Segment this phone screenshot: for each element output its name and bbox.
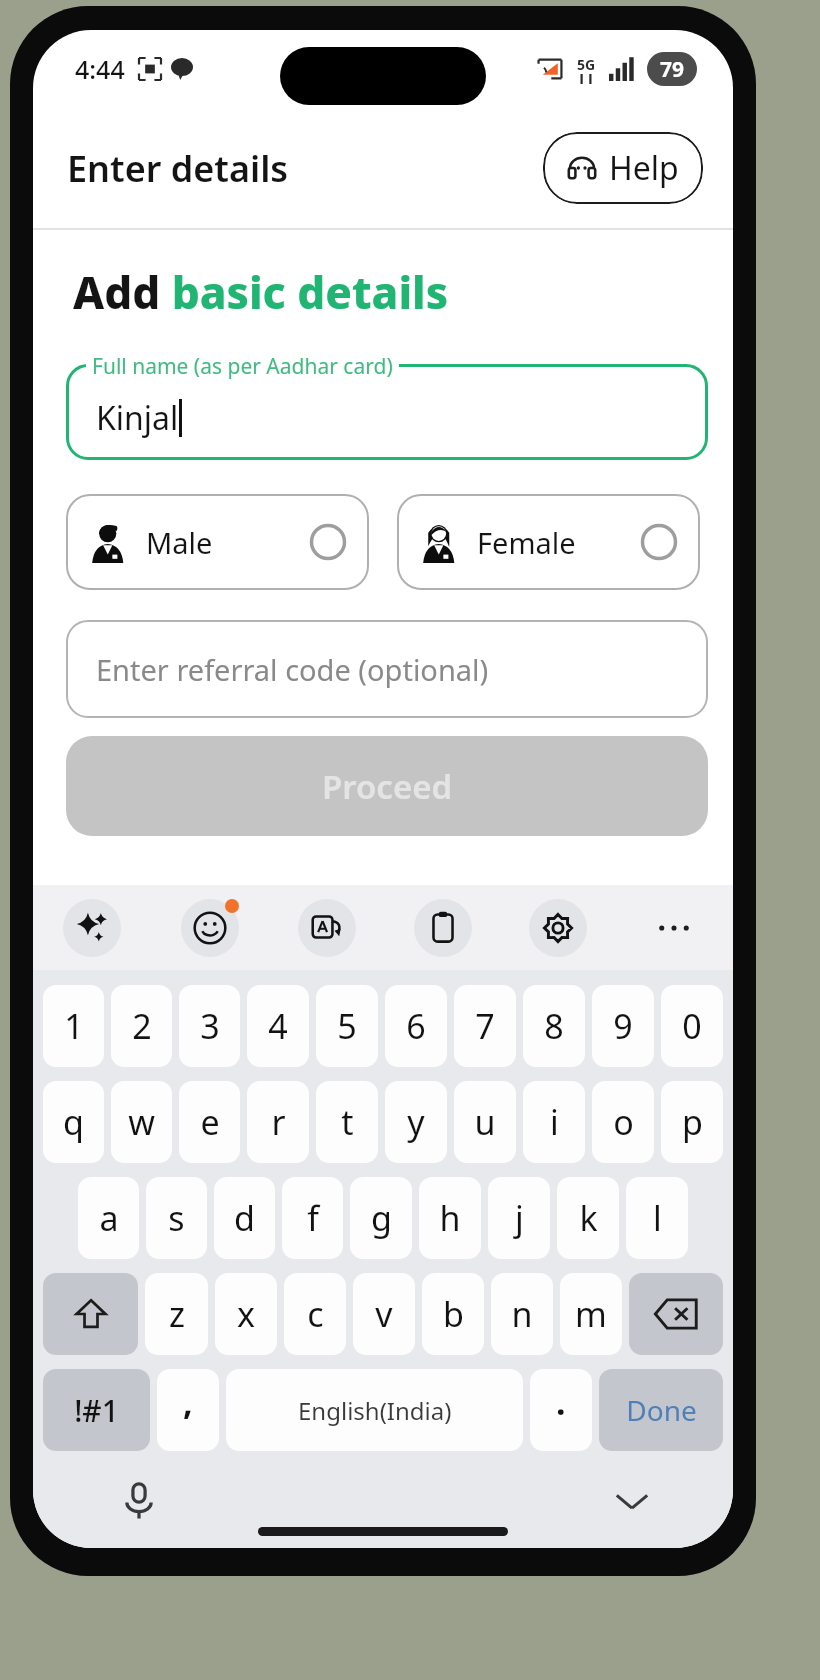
button[interactable]: f — [282, 1177, 343, 1259]
staticText: 7 — [475, 1003, 495, 1049]
button[interactable]: 5 — [316, 985, 378, 1067]
staticText: l — [653, 1195, 662, 1241]
staticText: Kinjal — [96, 396, 179, 440]
button[interactable]: k — [557, 1177, 619, 1259]
button[interactable]: v — [353, 1273, 415, 1355]
button[interactable]: l — [626, 1177, 688, 1259]
staticText: r — [271, 1099, 286, 1145]
button[interactable]: o — [592, 1081, 654, 1163]
button[interactable]: q — [43, 1081, 104, 1163]
button[interactable]: English(India) — [226, 1369, 523, 1451]
button[interactable]: 3 — [179, 985, 240, 1067]
staticText: Add basic details — [73, 262, 449, 322]
button[interactable]: 2 — [111, 985, 172, 1067]
button[interactable]: b — [422, 1273, 484, 1355]
button[interactable]: m — [560, 1273, 622, 1355]
button[interactable]: j — [488, 1177, 550, 1259]
staticText: o — [613, 1099, 634, 1145]
staticText: z — [169, 1291, 185, 1337]
staticText: English(India) — [298, 1394, 452, 1427]
button[interactable]: r — [247, 1081, 309, 1163]
button[interactable]: d — [214, 1177, 275, 1259]
staticText: 6 — [406, 1003, 426, 1049]
button[interactable]: Help — [543, 132, 703, 204]
button[interactable]: z — [145, 1273, 208, 1355]
button[interactable]: More options — [645, 899, 703, 957]
button[interactable]: 7 — [454, 985, 516, 1067]
button[interactable]: Hide keyboard — [601, 1470, 663, 1532]
staticText: u — [474, 1099, 496, 1145]
staticText: , — [183, 1379, 193, 1425]
button[interactable]: e — [179, 1081, 240, 1163]
button[interactable]: Female — [397, 494, 700, 590]
button[interactable]: Done — [599, 1369, 723, 1451]
button[interactable]: Proceed — [66, 736, 708, 836]
staticText: h — [439, 1195, 461, 1241]
button[interactable]: Enter referral code (optional) — [66, 620, 708, 718]
button[interactable]: y — [385, 1081, 447, 1163]
staticText: b — [443, 1291, 464, 1337]
button[interactable]: p — [661, 1081, 723, 1163]
staticText: 1 — [64, 1003, 84, 1049]
button[interactable]: s — [146, 1177, 207, 1259]
button[interactable]: Translate — [298, 899, 356, 957]
button[interactable]: Shift — [43, 1273, 138, 1355]
staticText: 2 — [132, 1003, 152, 1049]
button[interactable]: Magic compose — [63, 899, 121, 957]
button[interactable]: Settings — [529, 899, 587, 957]
staticText: y — [407, 1099, 425, 1145]
button[interactable]: 1 — [43, 985, 104, 1067]
staticText: g — [371, 1195, 392, 1241]
staticText: 4 — [268, 1003, 288, 1049]
button[interactable]: Backspace — [629, 1273, 723, 1355]
button[interactable]: 4 — [247, 985, 309, 1067]
button[interactable]: Emoji — [179, 897, 241, 959]
button[interactable]: g — [350, 1177, 412, 1259]
button[interactable]: 0 — [661, 985, 723, 1067]
button[interactable]: i — [523, 1081, 585, 1163]
staticText: p — [682, 1099, 703, 1145]
staticText: 5G — [577, 55, 596, 74]
button[interactable]: t — [316, 1081, 378, 1163]
button[interactable]: . — [530, 1369, 592, 1451]
staticText: v — [375, 1291, 393, 1337]
staticText: Female — [477, 523, 576, 562]
staticText: 3 — [200, 1003, 220, 1049]
button[interactable]: u — [454, 1081, 516, 1163]
button[interactable]: 9 — [592, 985, 654, 1067]
staticText: q — [63, 1099, 84, 1145]
staticText: . — [556, 1379, 566, 1425]
staticText: 0 — [682, 1003, 702, 1049]
button[interactable] — [66, 364, 708, 460]
staticText: a — [99, 1195, 119, 1241]
staticText: 4:44 — [75, 52, 125, 86]
staticText: Done — [626, 1391, 697, 1429]
button[interactable]: x — [215, 1273, 277, 1355]
button[interactable]: 6 — [385, 985, 447, 1067]
button[interactable]: n — [491, 1273, 553, 1355]
button[interactable]: c — [284, 1273, 346, 1355]
button[interactable]: w — [111, 1081, 172, 1163]
staticText: f — [307, 1195, 319, 1241]
button[interactable]: h — [419, 1177, 481, 1259]
button[interactable]: Clipboard — [414, 899, 472, 957]
staticText: w — [128, 1099, 155, 1145]
staticText: d — [234, 1195, 255, 1241]
staticText: c — [307, 1291, 324, 1337]
staticText: Proceed — [322, 764, 453, 809]
staticText: m — [575, 1291, 607, 1337]
staticText: k — [579, 1195, 598, 1241]
button[interactable]: a — [78, 1177, 139, 1259]
button[interactable]: 8 — [523, 985, 585, 1067]
staticText: Male — [146, 523, 213, 562]
button[interactable]: !#1 — [43, 1369, 150, 1451]
button[interactable]: , — [157, 1369, 219, 1451]
staticText: j — [515, 1195, 524, 1241]
staticText: 5 — [337, 1003, 357, 1049]
staticText: 9 — [613, 1003, 633, 1049]
button[interactable]: Male — [66, 494, 369, 590]
button[interactable]: Voice input — [108, 1470, 170, 1532]
staticText: Help — [609, 146, 679, 190]
staticText: t — [341, 1099, 354, 1145]
staticText: Full name (as per Aadhar card) — [92, 352, 393, 381]
